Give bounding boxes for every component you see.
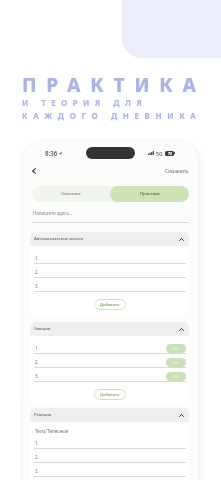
- staticText: ПРАКТИКА: [22, 72, 206, 98]
- other: Свернуть: [177, 325, 185, 333]
- button[interactable]: Описание: [32, 186, 110, 202]
- button[interactable]: 2.: [30, 354, 189, 368]
- button[interactable]: Назад: [26, 163, 42, 179]
- staticText: 3.: [35, 373, 39, 379]
- staticText: Практика: [140, 191, 160, 197]
- button[interactable]: 3.: [30, 368, 189, 382]
- button[interactable]: 2.: [30, 264, 189, 278]
- button[interactable]: 3.: [30, 278, 189, 292]
- button[interactable]: Напишите здесь...: [32, 206, 189, 223]
- staticText: 5G: [156, 150, 163, 157]
- staticText: Сохранить: [165, 168, 189, 174]
- button[interactable]: 1.: [30, 435, 189, 449]
- staticText: И ТЕОРИЯ ДЛЯ: [22, 97, 148, 108]
- button[interactable]: Автоматические мысли: [34, 232, 185, 246]
- button[interactable]: Эмоции: [34, 322, 185, 336]
- button[interactable]: Практика: [110, 186, 189, 202]
- staticText: 3.: [35, 468, 39, 474]
- staticText: 1.: [35, 255, 39, 261]
- button[interactable]: 2.: [30, 449, 189, 463]
- staticText: 72: [168, 151, 172, 156]
- button[interactable]: 50%: [166, 344, 186, 353]
- staticText: 50%: [172, 360, 180, 365]
- staticText: 3.: [35, 283, 39, 289]
- staticText: Реакции: [34, 412, 52, 418]
- staticText: Тело/Телесные: [35, 428, 69, 434]
- other: Свернуть: [177, 411, 185, 419]
- staticText: 1.: [35, 440, 39, 446]
- staticText: Эмоции: [34, 326, 51, 332]
- button[interactable]: Добавить: [94, 389, 126, 400]
- staticText: Автоматические мысли: [34, 236, 84, 242]
- button[interactable]: Сохранить: [162, 166, 192, 176]
- button[interactable]: 1.: [30, 246, 189, 264]
- staticText: 8:36: [45, 149, 58, 157]
- button[interactable]: 50%: [166, 372, 186, 381]
- staticText: КАЖДОГО ДНЕВНИКА: [22, 110, 202, 121]
- staticText: Добавить: [100, 302, 120, 308]
- staticText: 50%: [172, 374, 180, 379]
- staticText: 2.: [35, 269, 39, 275]
- staticText: 2.: [35, 359, 39, 365]
- other: Свернуть: [177, 235, 185, 243]
- button[interactable]: Добавить: [94, 299, 126, 310]
- staticText: Добавить: [100, 392, 120, 398]
- staticText: 50%: [172, 346, 180, 351]
- staticText: Описание: [61, 191, 81, 197]
- staticText: 1.: [35, 345, 39, 351]
- button[interactable]: 1.: [30, 336, 189, 354]
- staticText: 2.: [35, 454, 39, 460]
- button[interactable]: 50%: [166, 358, 186, 367]
- staticText: Напишите здесь...: [33, 210, 73, 216]
- button[interactable]: Реакции: [34, 408, 185, 422]
- button[interactable]: 3.: [30, 463, 189, 477]
